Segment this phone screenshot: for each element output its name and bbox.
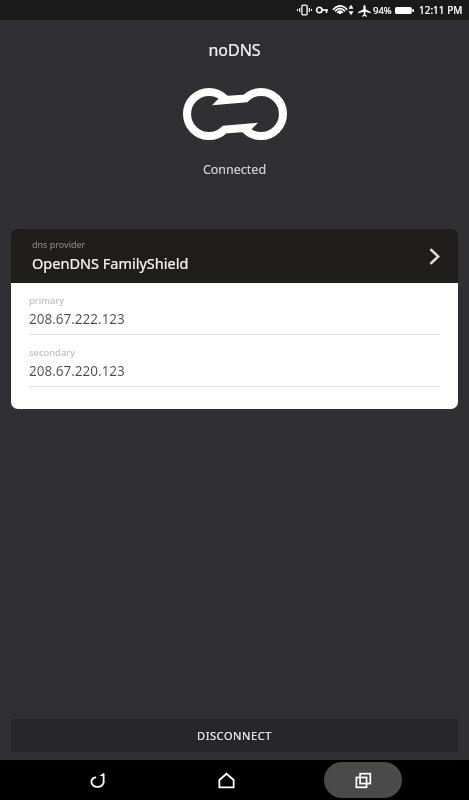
staticText: primary — [29, 294, 65, 307]
staticText: noDNS — [0, 39, 469, 61]
staticText: OpenDNS FamilyShield — [32, 253, 189, 273]
staticText: 208.67.220.123 — [29, 362, 125, 380]
button[interactable]: Back — [66, 761, 128, 799]
button[interactable]: secondary — [29, 346, 440, 387]
staticText: secondary — [29, 346, 76, 359]
button[interactable]: Recent apps — [324, 762, 402, 798]
staticText: dns provider — [32, 238, 86, 250]
staticText: 12:11 PM — [419, 3, 463, 17]
button[interactable]: DISCONNECT — [11, 719, 458, 752]
staticText: 208.67.222.123 — [29, 310, 125, 328]
button[interactable]: Home — [195, 761, 257, 799]
button[interactable]: dns provider — [11, 229, 458, 283]
button[interactable]: primary — [29, 294, 440, 335]
staticText: 94% — [373, 4, 392, 17]
staticText: Connected — [0, 161, 469, 178]
staticText: DISCONNECT — [197, 728, 273, 743]
